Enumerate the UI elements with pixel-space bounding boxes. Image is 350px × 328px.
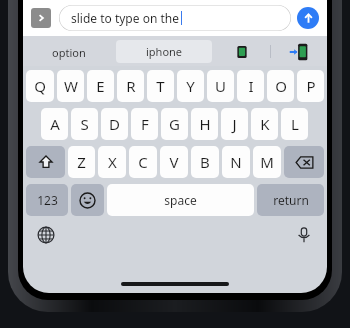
- staticText: R: [126, 76, 136, 96]
- button[interactable]: M: [253, 146, 281, 178]
- staticText: O: [275, 76, 287, 96]
- button[interactable]: space: [107, 184, 254, 216]
- staticText: Y: [186, 76, 195, 96]
- button[interactable]: Dictation: [291, 222, 317, 248]
- button[interactable]: Shift: [26, 146, 65, 178]
- staticText: G: [169, 114, 180, 134]
- button[interactable]: W: [57, 70, 84, 102]
- button[interactable]: 123: [26, 184, 68, 216]
- staticText: J: [232, 114, 237, 134]
- button[interactable]: option: [23, 41, 114, 63]
- staticText: T: [156, 76, 165, 96]
- staticText: slide to type on the: [71, 10, 179, 26]
- button[interactable]: D: [101, 108, 128, 140]
- staticText: C: [138, 152, 148, 172]
- staticText: W: [64, 76, 78, 96]
- staticText: A: [50, 114, 60, 134]
- staticText: S: [80, 114, 89, 134]
- staticText: E: [96, 76, 105, 96]
- button[interactable]: V: [160, 146, 188, 178]
- button[interactable]: N: [222, 146, 250, 178]
- button[interactable]: C: [129, 146, 157, 178]
- button[interactable]: slide to type on the: [59, 5, 291, 31]
- button[interactable]: T: [147, 70, 174, 102]
- staticText: X: [108, 152, 117, 172]
- staticText: N: [230, 152, 242, 172]
- button[interactable]: Send to phone: [271, 41, 327, 63]
- staticText: F: [141, 114, 149, 134]
- staticText: Q: [34, 76, 46, 96]
- button[interactable]: O: [267, 70, 294, 102]
- button[interactable]: G: [161, 108, 188, 140]
- button[interactable]: F: [131, 108, 158, 140]
- staticText: I: [248, 76, 254, 96]
- button[interactable]: B: [191, 146, 219, 178]
- staticText: M: [260, 152, 274, 172]
- staticText: space: [164, 192, 197, 208]
- staticText: P: [306, 76, 316, 96]
- button[interactable]: Send: [297, 7, 319, 29]
- button[interactable]: E: [87, 70, 114, 102]
- button[interactable]: K: [251, 108, 278, 140]
- staticText: V: [169, 152, 179, 172]
- button[interactable]: L: [281, 108, 308, 140]
- staticText: U: [215, 76, 226, 96]
- button[interactable]: S: [71, 108, 98, 140]
- staticText: H: [199, 114, 211, 134]
- staticText: option: [52, 45, 86, 60]
- staticText: 123: [37, 192, 58, 208]
- button[interactable]: I: [237, 70, 264, 102]
- button[interactable]: Backspace: [284, 146, 324, 178]
- button[interactable]: U: [207, 70, 234, 102]
- button[interactable]: Change keyboard: [33, 222, 59, 248]
- button[interactable]: iphone: [116, 40, 212, 63]
- button[interactable]: Emoji: [71, 184, 104, 216]
- button[interactable]: Y: [177, 70, 204, 102]
- staticText: D: [109, 114, 120, 134]
- button[interactable]: Show apps: [31, 8, 51, 28]
- button[interactable]: X: [98, 146, 126, 178]
- button[interactable]: H: [191, 108, 218, 140]
- button[interactable]: Q: [26, 70, 54, 102]
- staticText: iphone: [146, 44, 183, 59]
- staticText: B: [200, 152, 210, 172]
- staticText: L: [291, 114, 299, 134]
- button[interactable]: Phone suggestion: [214, 41, 270, 63]
- button[interactable]: return: [257, 184, 324, 216]
- button[interactable]: R: [117, 70, 144, 102]
- staticText: K: [260, 114, 270, 134]
- button[interactable]: Z: [68, 146, 95, 178]
- button[interactable]: J: [221, 108, 248, 140]
- staticText: return: [273, 192, 309, 208]
- button[interactable]: P: [297, 70, 324, 102]
- staticText: Z: [77, 152, 86, 172]
- button[interactable]: A: [41, 108, 68, 140]
